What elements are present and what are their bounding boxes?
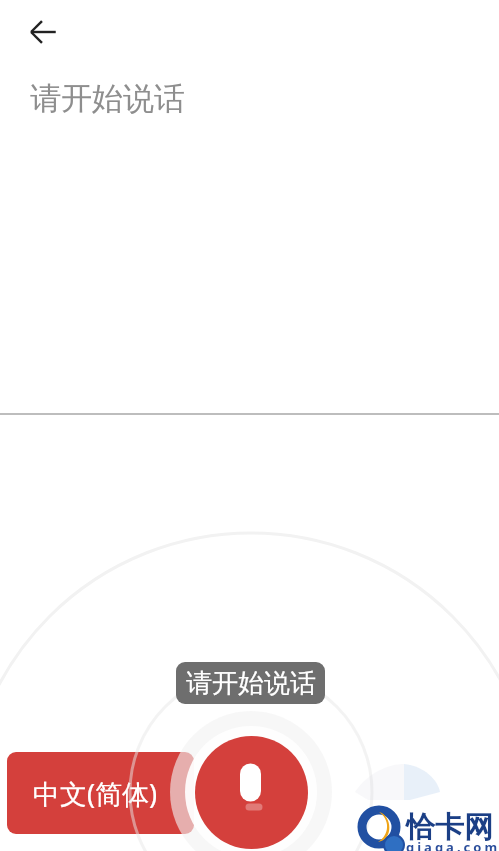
staticText: qiaqa.com (406, 838, 499, 851)
staticText: 请开始说话 (186, 667, 316, 700)
staticText: 请开始说话 (30, 79, 185, 118)
button[interactable]: Microphone (195, 736, 308, 849)
button[interactable]: 中文(简体) (7, 752, 194, 834)
staticText: 恰卡网 (406, 809, 493, 846)
button[interactable]: Back (17, 6, 69, 58)
staticText: 中文(简体) (33, 775, 158, 812)
